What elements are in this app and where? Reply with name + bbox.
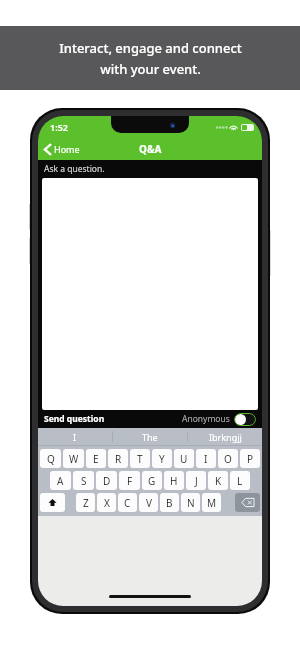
button[interactable]: K <box>208 471 228 490</box>
button[interactable]: R <box>108 449 128 468</box>
button[interactable]: Shift <box>40 493 65 512</box>
button[interactable]: N <box>181 493 200 512</box>
staticText: U <box>180 452 188 466</box>
staticText: G <box>148 474 156 488</box>
staticText: X <box>104 496 110 510</box>
button[interactable]: I <box>196 449 216 468</box>
button[interactable]: Send question <box>44 413 105 425</box>
staticText: with your event. <box>100 60 201 78</box>
button[interactable]: H <box>164 471 184 490</box>
staticText: R <box>115 452 122 466</box>
staticText: Ibrkngjj <box>209 431 242 443</box>
staticText: A <box>57 474 64 488</box>
staticText: Y <box>159 452 165 466</box>
button[interactable]: Home <box>38 140 88 158</box>
button[interactable]: J <box>186 471 206 490</box>
button[interactable]: S <box>73 471 94 490</box>
button[interactable]: L <box>230 471 250 490</box>
button[interactable]: D <box>96 471 117 490</box>
staticText: M <box>207 496 217 510</box>
button[interactable]: P <box>240 449 260 468</box>
button[interactable]: G <box>142 471 162 490</box>
staticText: D <box>103 474 111 488</box>
staticText: K <box>215 474 222 488</box>
staticText: 1:52 <box>50 121 68 133</box>
button[interactable]: Y <box>152 449 172 468</box>
staticText: Interact, engage and connect <box>59 39 242 57</box>
button[interactable]: V <box>139 493 158 512</box>
staticText: Send question <box>44 413 105 425</box>
staticText: Q&A <box>139 142 162 156</box>
button[interactable]: T <box>130 449 150 468</box>
button[interactable]: M <box>202 493 221 512</box>
button[interactable]: U <box>174 449 194 468</box>
button[interactable]: The <box>113 428 187 445</box>
button[interactable]: B <box>160 493 179 512</box>
staticText: T <box>137 452 143 466</box>
button[interactable]: W <box>63 449 84 468</box>
staticText: C <box>124 496 131 510</box>
staticText: B <box>166 496 173 510</box>
staticText: I <box>73 431 77 443</box>
staticText: O <box>224 452 232 466</box>
staticText: Anonymous <box>182 413 230 425</box>
staticText: S <box>81 474 87 488</box>
staticText: E <box>93 452 99 466</box>
button[interactable]: C <box>118 493 137 512</box>
button[interactable]: A <box>50 471 71 490</box>
staticText: Home <box>54 143 80 155</box>
staticText: H <box>170 474 178 488</box>
staticText: W <box>69 452 79 466</box>
button[interactable]: Z <box>76 493 95 512</box>
button[interactable]: Backspace <box>235 493 260 512</box>
staticText: Z <box>83 496 89 510</box>
button[interactable]: O <box>218 449 238 468</box>
button[interactable]: F <box>119 471 140 490</box>
button[interactable]: Anonymous toggle <box>234 413 256 426</box>
staticText: Ask a question. <box>44 163 105 175</box>
button[interactable]: Q <box>40 449 61 468</box>
staticText: P <box>247 452 254 466</box>
staticText: Q <box>47 452 55 466</box>
staticText: The <box>142 431 158 443</box>
button[interactable]: X <box>97 493 116 512</box>
staticText: V <box>146 496 152 510</box>
button[interactable]: Ibrkngjj <box>188 428 262 445</box>
staticText: J <box>195 474 198 488</box>
staticText: N <box>187 496 195 510</box>
button[interactable]: I <box>38 428 112 445</box>
button[interactable]: E <box>86 449 106 468</box>
staticText: I <box>204 452 208 466</box>
staticText: L <box>237 474 243 488</box>
staticText: F <box>127 474 133 488</box>
